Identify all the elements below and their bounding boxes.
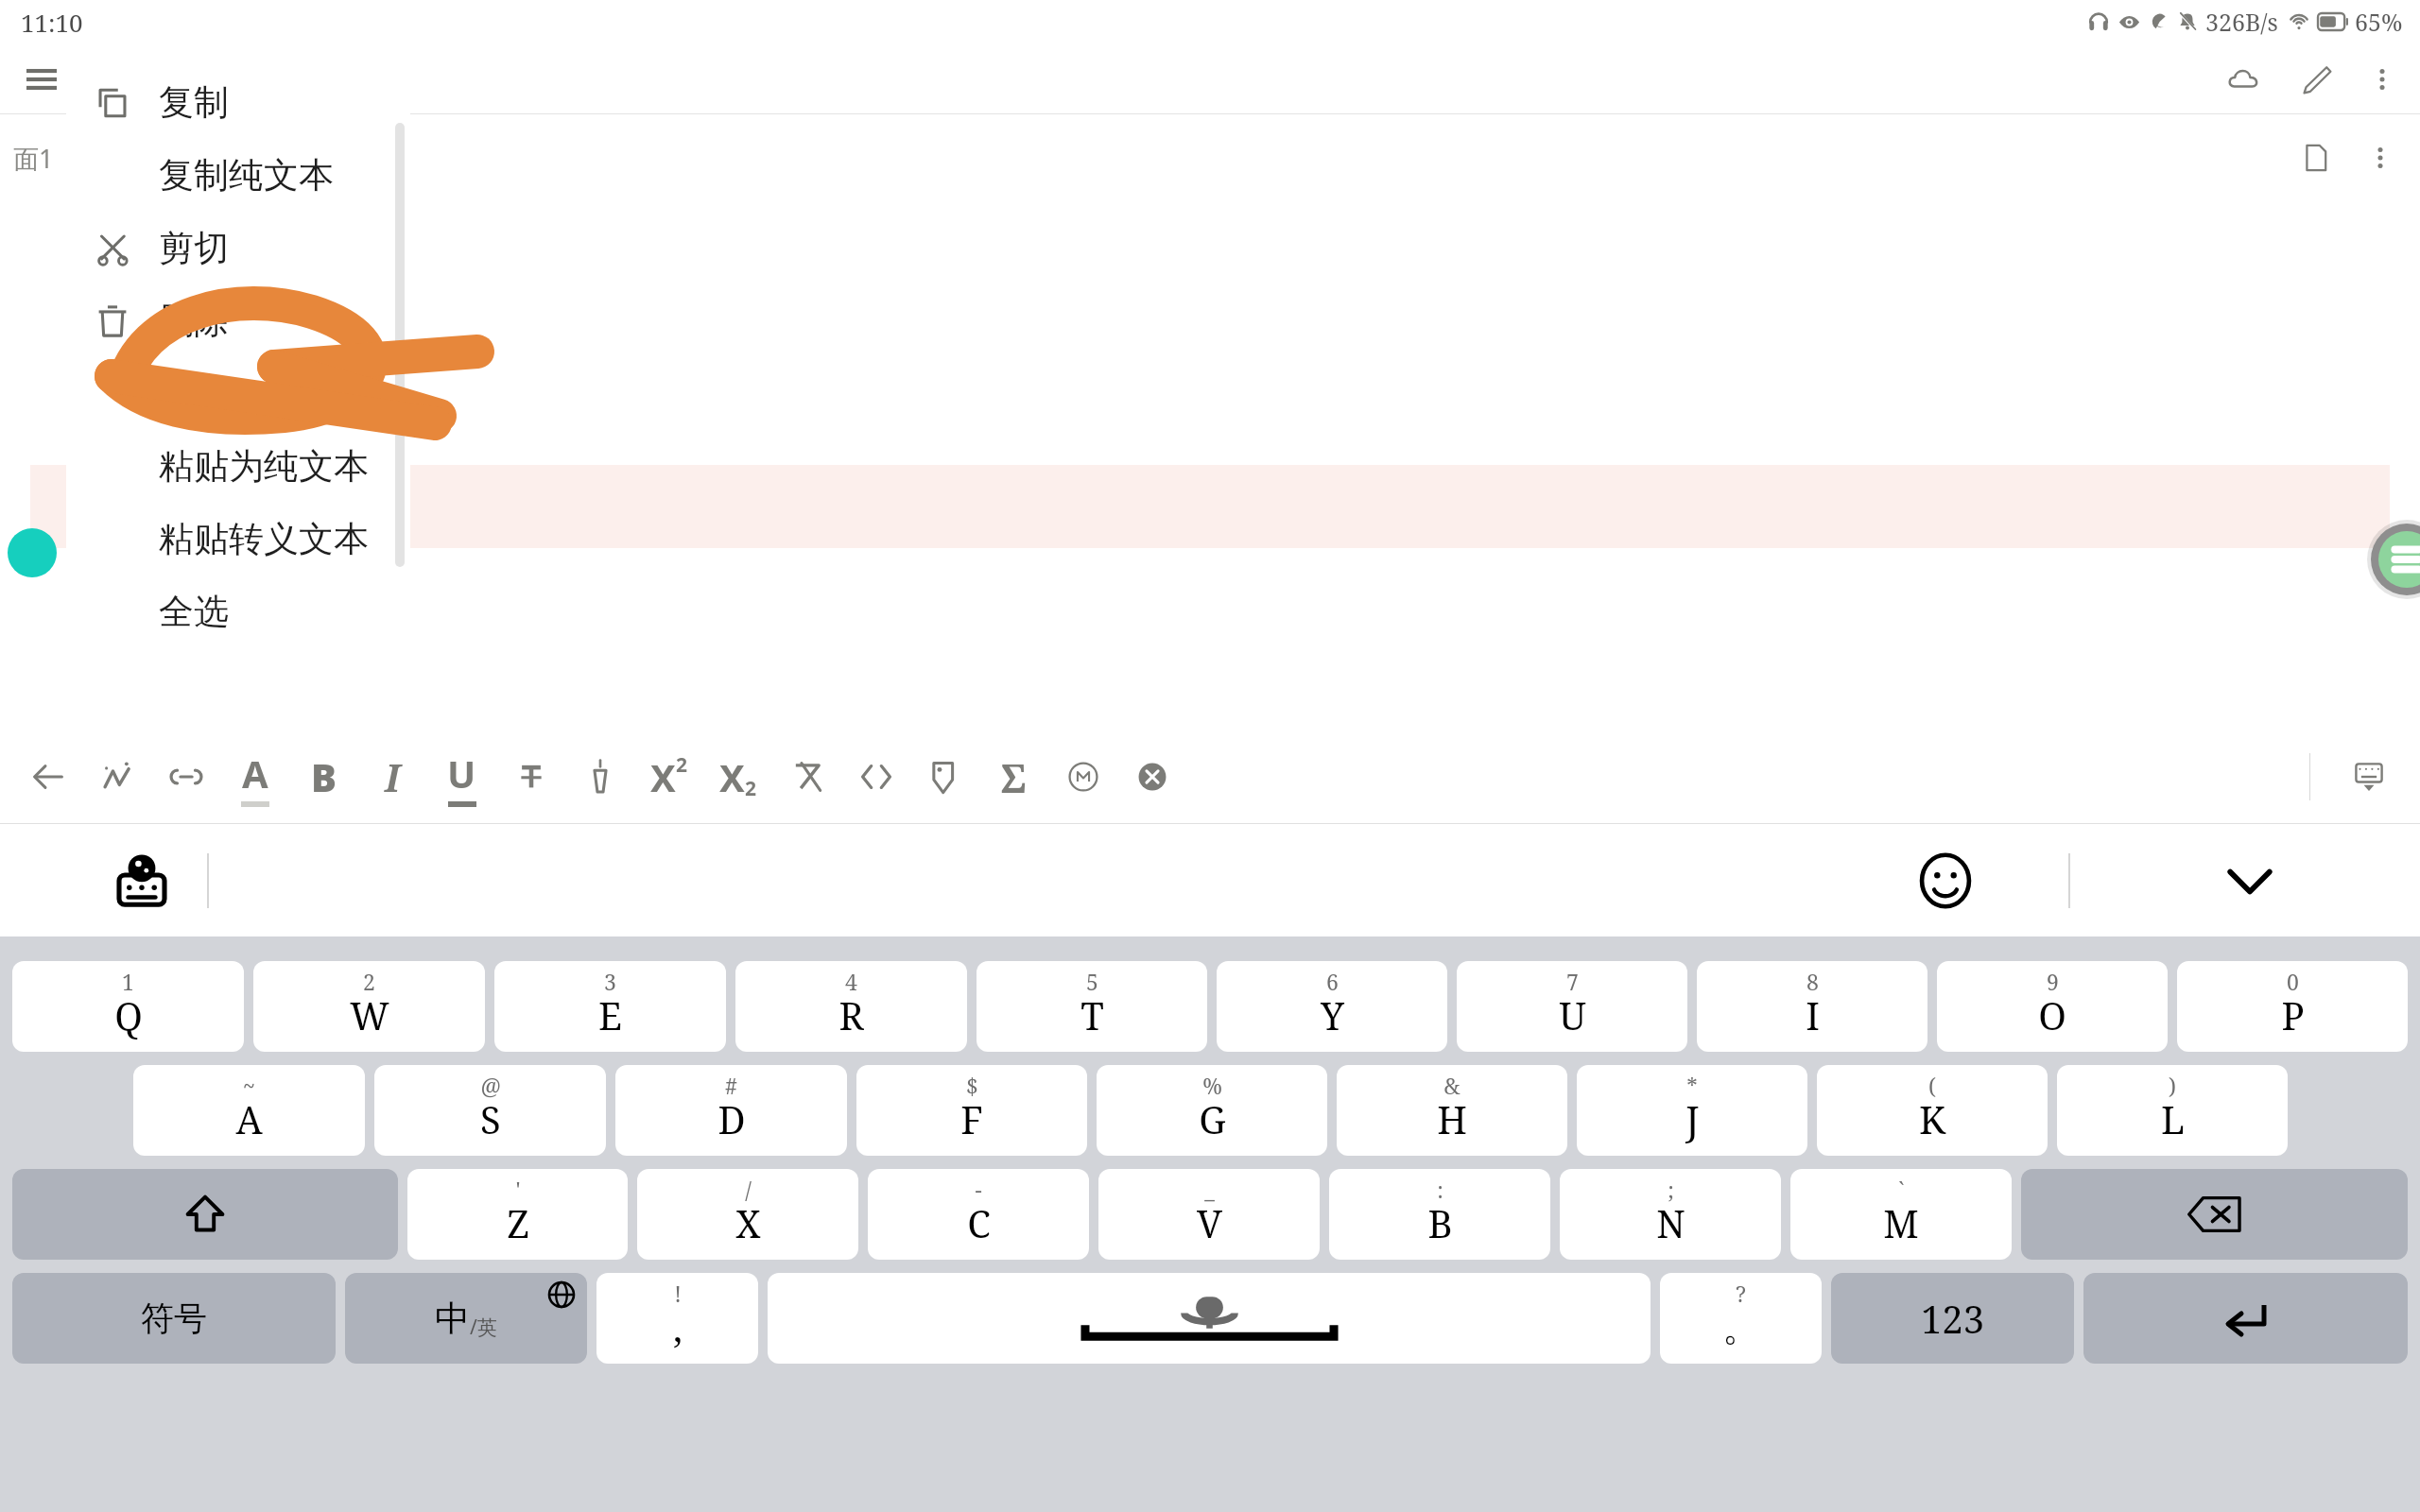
button[interactable]: Backspace — [2021, 1169, 2408, 1260]
staticText: & — [1443, 1071, 1461, 1100]
button[interactable]: X — [634, 738, 703, 816]
button[interactable]: 3 — [494, 961, 726, 1052]
button[interactable]: Emoji — [1908, 843, 1983, 919]
button[interactable]: More options — [2358, 55, 2407, 104]
staticText: W — [350, 989, 389, 1040]
staticText: /英 — [470, 1314, 497, 1341]
button[interactable]: Hide keyboard — [2339, 747, 2399, 807]
button[interactable]: 粘贴 — [66, 357, 410, 430]
button[interactable]: Tag — [910, 738, 979, 816]
staticText: 4 — [845, 967, 857, 996]
button[interactable]: Cloud sync — [2216, 52, 2271, 107]
button[interactable]: Numbers — [1831, 1273, 2074, 1364]
button[interactable]: X — [703, 738, 772, 816]
button[interactable]: ; — [1560, 1169, 1781, 1260]
button[interactable]: 7 — [1457, 961, 1687, 1052]
button[interactable]: 复制 — [66, 66, 410, 139]
staticText: % — [1202, 1071, 1222, 1100]
staticText: 5 — [1086, 967, 1098, 996]
button[interactable]: ~ — [133, 1065, 365, 1156]
staticText: F — [960, 1093, 983, 1144]
staticText: X — [650, 751, 676, 802]
button[interactable]: 剪切 — [66, 212, 410, 284]
button[interactable]: Edit — [2290, 52, 2344, 107]
staticText: 符号 — [141, 1297, 207, 1339]
button[interactable]: 8 — [1697, 961, 1927, 1052]
button[interactable]: Document — [2290, 131, 2342, 184]
button[interactable]: 6 — [1217, 961, 1447, 1052]
staticText: 2 — [676, 751, 688, 779]
button[interactable]: 粘贴转义文本 — [66, 503, 410, 576]
button[interactable]: ` — [1790, 1169, 2012, 1260]
button[interactable]: Σ — [979, 738, 1048, 816]
staticText: # — [725, 1071, 737, 1100]
button[interactable]: 1 — [12, 961, 244, 1052]
staticText: 粘贴为纯文本 — [159, 444, 369, 489]
button[interactable]: @ — [374, 1065, 606, 1156]
button[interactable]: Link — [151, 738, 220, 816]
button[interactable]: $ — [856, 1065, 1087, 1156]
staticText: ) — [2169, 1071, 2176, 1100]
button[interactable]: Close — [1117, 738, 1186, 816]
button[interactable]: More — [2356, 133, 2405, 182]
staticText: G — [1199, 1093, 1226, 1144]
button[interactable]: 0 — [2177, 961, 2408, 1052]
button[interactable]: Switch input language — [104, 843, 180, 919]
button[interactable]: / — [637, 1169, 858, 1260]
staticText: E — [598, 989, 622, 1040]
button[interactable]: ? — [1660, 1273, 1822, 1364]
button[interactable]: 4 — [735, 961, 967, 1052]
button[interactable]: 5 — [977, 961, 1207, 1052]
staticText: A — [235, 1093, 263, 1144]
button[interactable]: Clear format — [772, 738, 841, 816]
staticText: 9 — [2047, 967, 2059, 996]
button[interactable]: Undo — [13, 738, 82, 816]
button[interactable]: Symbols — [12, 1273, 336, 1364]
staticText: - — [975, 1175, 982, 1204]
button[interactable]: # — [615, 1065, 847, 1156]
button[interactable]: 复制纯文本 — [66, 139, 410, 212]
staticText: D — [717, 1093, 746, 1144]
button[interactable]: * — [1577, 1065, 1807, 1156]
button[interactable]: 删除 — [66, 284, 410, 357]
button[interactable]: & — [1337, 1065, 1567, 1156]
button[interactable]: U — [427, 738, 496, 816]
button[interactable]: I — [358, 738, 427, 816]
button[interactable]: AI — [82, 738, 151, 816]
staticText: B — [1427, 1197, 1453, 1248]
button[interactable]: A — [220, 738, 289, 816]
button[interactable]: 全选 — [66, 576, 410, 648]
button[interactable]: Enter — [2083, 1273, 2408, 1364]
button[interactable]: 粘贴为纯文本 — [66, 430, 410, 503]
button[interactable]: ' — [407, 1169, 628, 1260]
button[interactable]: Highlight — [565, 738, 634, 816]
button[interactable]: 9 — [1937, 961, 2168, 1052]
button[interactable]: ) — [2057, 1065, 2288, 1156]
button[interactable]: : — [1329, 1169, 1550, 1260]
staticText: $ — [966, 1071, 978, 1100]
button[interactable]: Strikethrough — [496, 738, 565, 816]
staticText: 8 — [1806, 967, 1819, 996]
staticText: 面1 — [13, 141, 54, 176]
button[interactable]: Markdown — [1048, 738, 1117, 816]
staticText: 0 — [2287, 967, 2299, 996]
button[interactable]: B — [289, 738, 358, 816]
button[interactable]: _ — [1098, 1169, 1320, 1260]
staticText: 3 — [604, 967, 616, 996]
staticText: Q — [114, 989, 143, 1040]
staticText: 粘贴转义文本 — [159, 517, 369, 561]
button[interactable]: Code — [841, 738, 910, 816]
button[interactable]: 2 — [253, 961, 485, 1052]
button[interactable]: Space — [768, 1273, 1651, 1364]
staticText: 。 — [1722, 1303, 1760, 1350]
button[interactable]: Collapse keyboard — [2212, 843, 2288, 919]
button[interactable]: Menu — [15, 53, 68, 106]
button[interactable]: - — [868, 1169, 1089, 1260]
button[interactable]: ! — [596, 1273, 758, 1364]
staticText: J — [1685, 1093, 1700, 1144]
staticText: 中 — [435, 1297, 470, 1341]
button[interactable]: % — [1097, 1065, 1327, 1156]
button[interactable]: Chinese English toggle — [345, 1273, 587, 1364]
button[interactable]: ( — [1817, 1065, 2048, 1156]
button[interactable]: Shift — [12, 1169, 398, 1260]
